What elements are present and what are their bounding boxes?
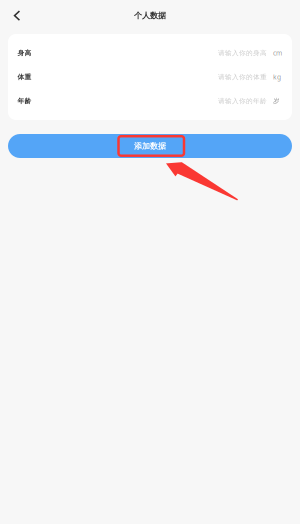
staticText: kg xyxy=(273,73,281,81)
staticText: 体重 xyxy=(18,73,32,81)
staticText: 请输入你的身高 xyxy=(218,49,267,57)
staticText: 个人数据 xyxy=(134,11,166,20)
button[interactable]: 添加数据 xyxy=(8,134,292,158)
staticText: 请输入你的体重 xyxy=(218,73,267,81)
button[interactable]: Back xyxy=(0,2,34,30)
staticText: 年龄 xyxy=(18,97,32,105)
staticText: 请输入你的年龄 xyxy=(218,97,267,105)
staticText: 添加数据 xyxy=(134,141,166,151)
staticText: 岁 xyxy=(273,97,280,105)
staticText: 身高 xyxy=(18,49,32,57)
staticText: cm xyxy=(273,49,282,57)
